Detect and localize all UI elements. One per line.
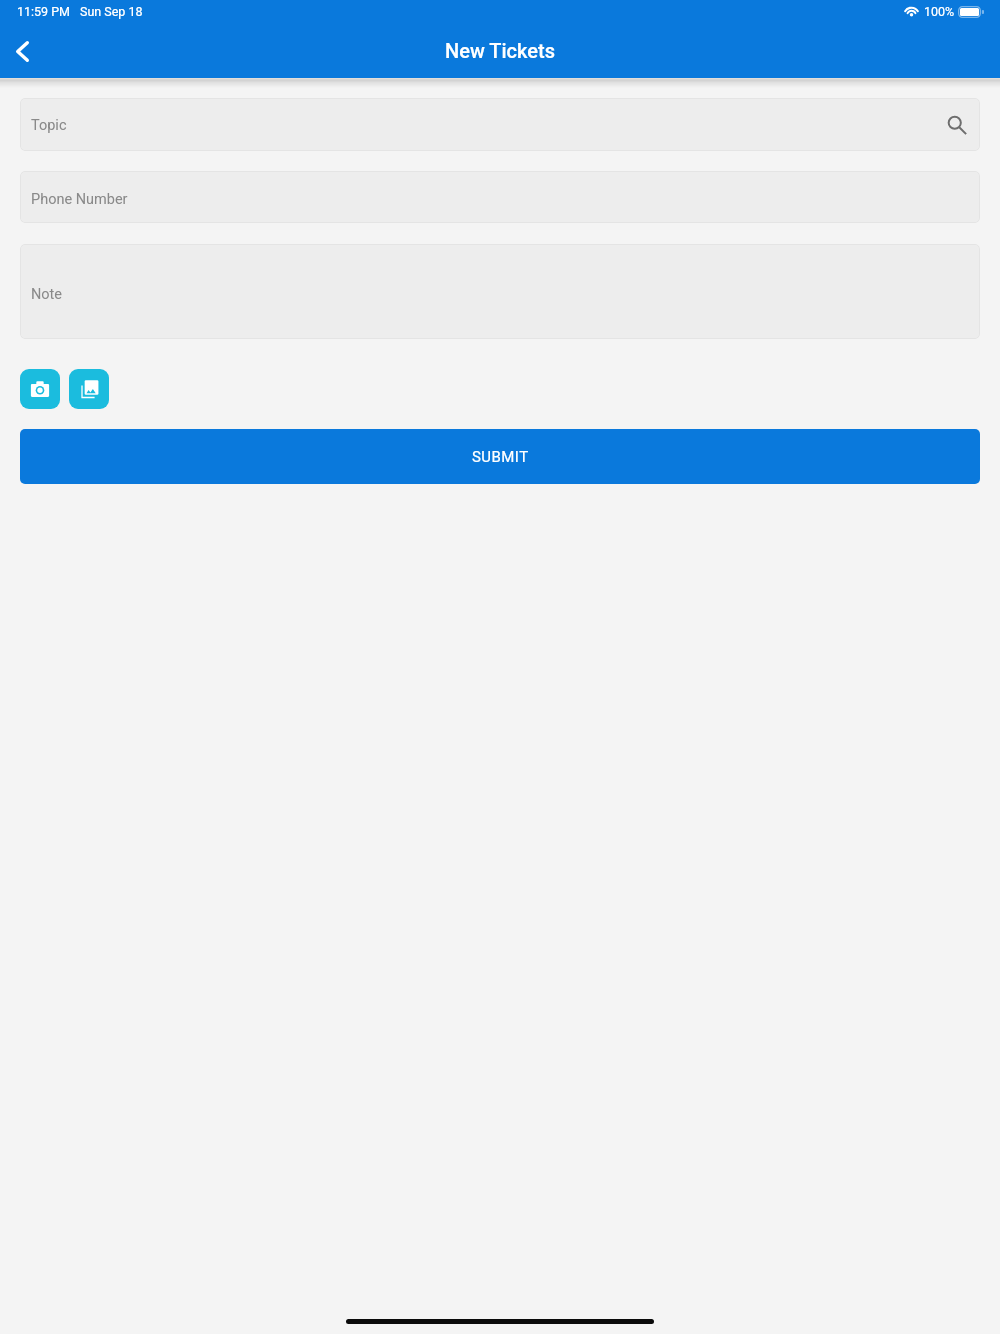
- staticText: New Tickets: [445, 39, 555, 62]
- staticText: Topic: [31, 117, 67, 134]
- staticText: Phone Number: [31, 191, 128, 208]
- button[interactable]: Search: [944, 112, 970, 138]
- button[interactable]: SUBMIT: [20, 429, 980, 484]
- staticText: SUBMIT: [472, 448, 529, 466]
- staticText: 100%: [924, 4, 955, 19]
- button[interactable]: Note: [20, 244, 980, 339]
- button[interactable]: Choose from gallery: [69, 369, 109, 409]
- button[interactable]: Take photo: [20, 369, 60, 409]
- button[interactable]: Phone Number: [20, 171, 980, 223]
- button[interactable]: Topic: [20, 98, 980, 151]
- staticText: Note: [31, 286, 63, 303]
- button[interactable]: Back: [4, 33, 40, 69]
- staticText: 11:59 PM: [17, 4, 71, 19]
- staticText: Sun Sep 18: [80, 4, 143, 19]
